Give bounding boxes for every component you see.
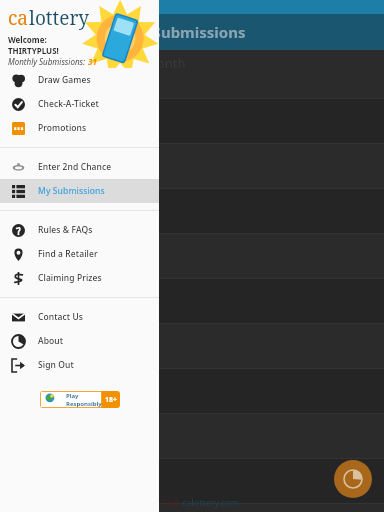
button[interactable]: Draw Games (0, 68, 159, 92)
button[interactable]: Check-A-Ticket (0, 92, 159, 116)
button[interactable]: Sign Out (0, 353, 159, 377)
staticText: My Submissions (126, 22, 246, 42)
staticText: Sign Out (38, 359, 74, 371)
button[interactable]: Find a Retailer (0, 242, 159, 266)
button[interactable]: My Submissions (0, 179, 159, 203)
staticText: Enter 2nd Chance (38, 161, 112, 173)
button[interactable]: About (0, 329, 159, 353)
staticText: Month (145, 54, 186, 72)
button[interactable] (0, 504, 384, 512)
staticText: 31 (88, 56, 97, 67)
staticText: Check-A-Ticket (38, 98, 99, 110)
button[interactable] (0, 369, 384, 413)
button[interactable]: Enter 2nd Chance (0, 155, 159, 179)
button[interactable] (0, 99, 384, 143)
staticText: About (38, 335, 64, 347)
staticText: Find a Retailer (38, 248, 98, 260)
staticText: ca (8, 5, 29, 31)
button[interactable] (0, 459, 384, 503)
staticText: Visit (162, 496, 182, 508)
button[interactable]: Claiming Prizes (0, 266, 159, 290)
staticText: Play (66, 392, 79, 400)
button[interactable]: Rules & FAQs (0, 218, 159, 242)
staticText: Responsibly (66, 400, 102, 408)
button[interactable] (0, 76, 384, 98)
button[interactable] (0, 414, 384, 458)
staticText: My Submissions (38, 185, 105, 197)
button[interactable]: Contact Us (0, 305, 159, 329)
button[interactable] (0, 189, 384, 233)
button[interactable] (0, 279, 384, 323)
button[interactable]: Promotions (0, 116, 159, 140)
button[interactable] (0, 144, 384, 188)
button[interactable] (0, 234, 384, 278)
staticText: Promotions (38, 122, 87, 134)
staticText: lottery (29, 5, 90, 31)
staticText: Rules & FAQs (38, 224, 93, 236)
button[interactable]: Filter submissions (334, 460, 372, 498)
staticText: Contact Us (38, 311, 84, 323)
staticText: 18+ (105, 395, 118, 405)
staticText: Claiming Prizes (38, 272, 102, 284)
staticText: calottery.com (182, 496, 240, 508)
staticText: THIRTYPLUS! (8, 45, 59, 56)
button[interactable] (0, 324, 384, 368)
staticText: Welcome: (8, 34, 47, 45)
staticText: Monthly Submissions: (8, 56, 88, 67)
staticText: Draw Games (38, 74, 91, 86)
button[interactable]: Play Responsibly 18+ (40, 391, 120, 408)
